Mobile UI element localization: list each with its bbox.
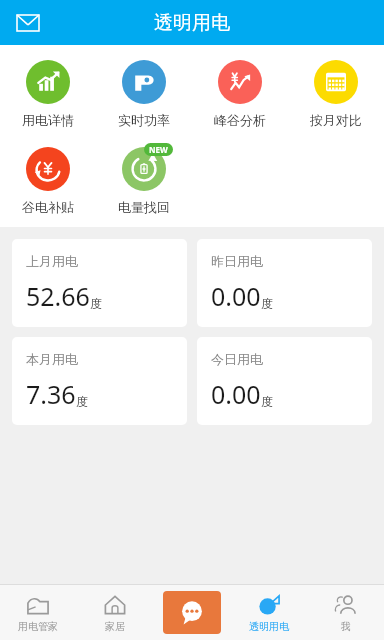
staticText: 本月用电 (26, 351, 78, 367)
staticText: 7.36 (26, 377, 76, 411)
button[interactable]: Chat (163, 591, 221, 634)
staticText: 实时功率 (118, 112, 170, 128)
button[interactable]: 用电详情 (0, 51, 96, 132)
button[interactable]: 昨日用电 (197, 239, 372, 327)
button[interactable]: 本月用电 (12, 337, 187, 425)
staticText: 电量找回 (118, 199, 170, 215)
button[interactable]: Messages (10, 5, 46, 41)
staticText: 峰谷分析 (214, 112, 266, 128)
staticText: 上月用电 (26, 253, 78, 269)
staticText: 52.66 (26, 279, 90, 313)
staticText: 度 (261, 296, 273, 311)
staticText: 用电管家 (18, 620, 58, 633)
button[interactable]: 家居 (76, 585, 153, 640)
staticText: NEW (149, 144, 168, 155)
button[interactable]: 今日用电 (197, 337, 372, 425)
staticText: 透明用电 (249, 620, 289, 633)
button[interactable]: 谷电补贴 (0, 138, 96, 219)
staticText: 我 (341, 620, 351, 633)
button[interactable]: 透明用电 (230, 585, 307, 640)
button[interactable]: 我 (307, 585, 384, 640)
staticText: 按月对比 (310, 112, 362, 128)
staticText: 家居 (105, 620, 125, 633)
staticText: 度 (90, 296, 102, 311)
button[interactable]: NEW (96, 138, 192, 219)
staticText: 0.00 (211, 377, 261, 411)
button[interactable]: 按月对比 (288, 51, 384, 132)
button[interactable]: 用电管家 (0, 585, 76, 640)
staticText: 透明用电 (154, 11, 230, 35)
staticText: 0.00 (211, 279, 261, 313)
staticText: 今日用电 (211, 351, 263, 367)
staticText: 度 (261, 394, 273, 409)
staticText: 昨日用电 (211, 253, 263, 269)
button[interactable]: 上月用电 (12, 239, 187, 327)
staticText: 谷电补贴 (22, 199, 74, 215)
staticText: 度 (76, 394, 88, 409)
staticText: 用电详情 (22, 112, 74, 128)
button[interactable]: 实时功率 (96, 51, 192, 132)
button[interactable]: 峰谷分析 (192, 51, 288, 132)
